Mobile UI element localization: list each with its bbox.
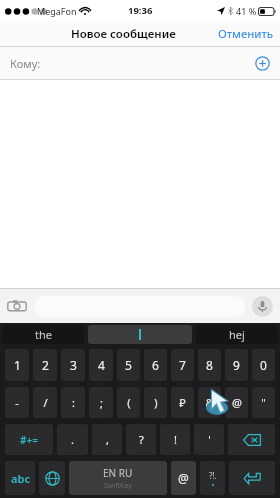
staticText: ; [100,395,103,410]
button[interactable]: : [61,387,85,418]
button[interactable]: Кому: [0,47,280,79]
staticText: : [72,395,75,410]
button[interactable]: 2 [33,349,57,381]
staticText: 3 [70,357,77,373]
button[interactable]: & [198,387,221,418]
staticText: 2 [42,357,49,373]
button[interactable]: ' [194,424,224,455]
button[interactable]: ( [117,387,140,418]
staticText: MegaFon [37,5,77,17]
staticText: 7 [179,357,186,373]
staticText: #+= [20,433,38,447]
staticText: ?!. [209,470,217,481]
staticText: . [71,432,74,447]
button[interactable]: abc [5,461,35,495]
staticText: abc [11,471,30,486]
staticText: 9 [233,357,240,373]
staticText: ( [127,395,131,410]
staticText: " [261,395,266,410]
staticText: EN RU [103,466,133,480]
button[interactable]: #+= [5,424,53,455]
staticText: 4 [98,357,105,373]
button[interactable]: Symbols [200,461,225,495]
button[interactable] [88,325,192,344]
staticText: 5 [125,357,132,373]
staticText: 41 % [236,5,257,17]
staticText: 1 [14,357,21,373]
button[interactable]: Change language [39,461,65,495]
button[interactable]: Dictate [252,296,273,317]
button[interactable]: - [5,387,29,418]
button[interactable]: 1 [5,349,29,381]
button[interactable]: " [252,387,275,418]
button[interactable]: 8 [198,349,221,381]
staticText: the [35,327,52,342]
staticText: 19:36 [128,4,153,17]
staticText: / [43,395,48,410]
staticText: - [15,395,19,410]
staticText: ₽ [179,395,186,410]
button[interactable]: ₽ [171,387,194,418]
button[interactable]: ; [89,387,113,418]
button[interactable]: 7 [171,349,194,381]
staticText: SwiftKey [104,481,132,491]
button[interactable]: EN RU [69,461,167,495]
button[interactable]: 0 [252,349,275,381]
staticText: , [106,432,109,447]
button[interactable]: 9 [225,349,248,381]
button[interactable]: hej [196,325,278,344]
button[interactable]: ? [126,424,156,455]
button[interactable]: Новое сообщение [69,24,178,44]
button[interactable]: Отменить [212,22,280,46]
button[interactable]: / [33,387,57,418]
staticText: & [205,395,214,410]
button[interactable]: the [2,325,84,344]
button[interactable]: 4 [89,349,113,381]
button[interactable]: @ [171,461,196,495]
staticText: ? [139,432,144,447]
staticText: 8 [206,357,213,373]
staticText: 0 [260,357,267,373]
staticText: ' [208,432,211,447]
button[interactable]: ) [144,387,167,418]
staticText: @ [178,470,189,486]
staticText: ) [154,395,158,410]
button[interactable]: 5 [117,349,140,381]
button[interactable]: Enter [229,461,275,495]
staticText: ! [174,432,177,447]
staticText: Кому: [10,56,41,71]
staticText: hej [229,327,245,342]
button[interactable]: 3 [61,349,85,381]
button[interactable]: . [57,424,88,455]
button[interactable]: Camera [7,296,27,316]
button[interactable]: 6 [144,349,167,381]
button[interactable]: Backspace [228,424,275,455]
staticText: @ [232,395,242,410]
button[interactable]: @ [225,387,248,418]
button[interactable]: Add recipient [255,56,270,71]
staticText: 6 [152,357,159,373]
button[interactable]: , [92,424,122,455]
button[interactable]: ! [160,424,190,455]
